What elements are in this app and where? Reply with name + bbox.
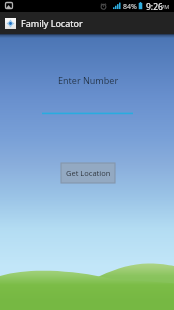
- staticText: PM: [161, 3, 170, 10]
- staticText: Family Locator: [21, 17, 83, 29]
- button[interactable]: Phone number input field: [42, 101, 133, 118]
- button[interactable]: Family Locator app icon: [0, 12, 174, 34]
- staticText: Get Location: [66, 168, 111, 178]
- button[interactable]: Get Location: [61, 163, 115, 183]
- other: Screenshot captured notification: [5, 2, 13, 9]
- staticText: 84%: [123, 2, 137, 12]
- staticText: 9:26: [146, 1, 163, 13]
- other: Family Locator app icon: [6, 19, 15, 28]
- staticText: Enter Number: [58, 74, 119, 86]
